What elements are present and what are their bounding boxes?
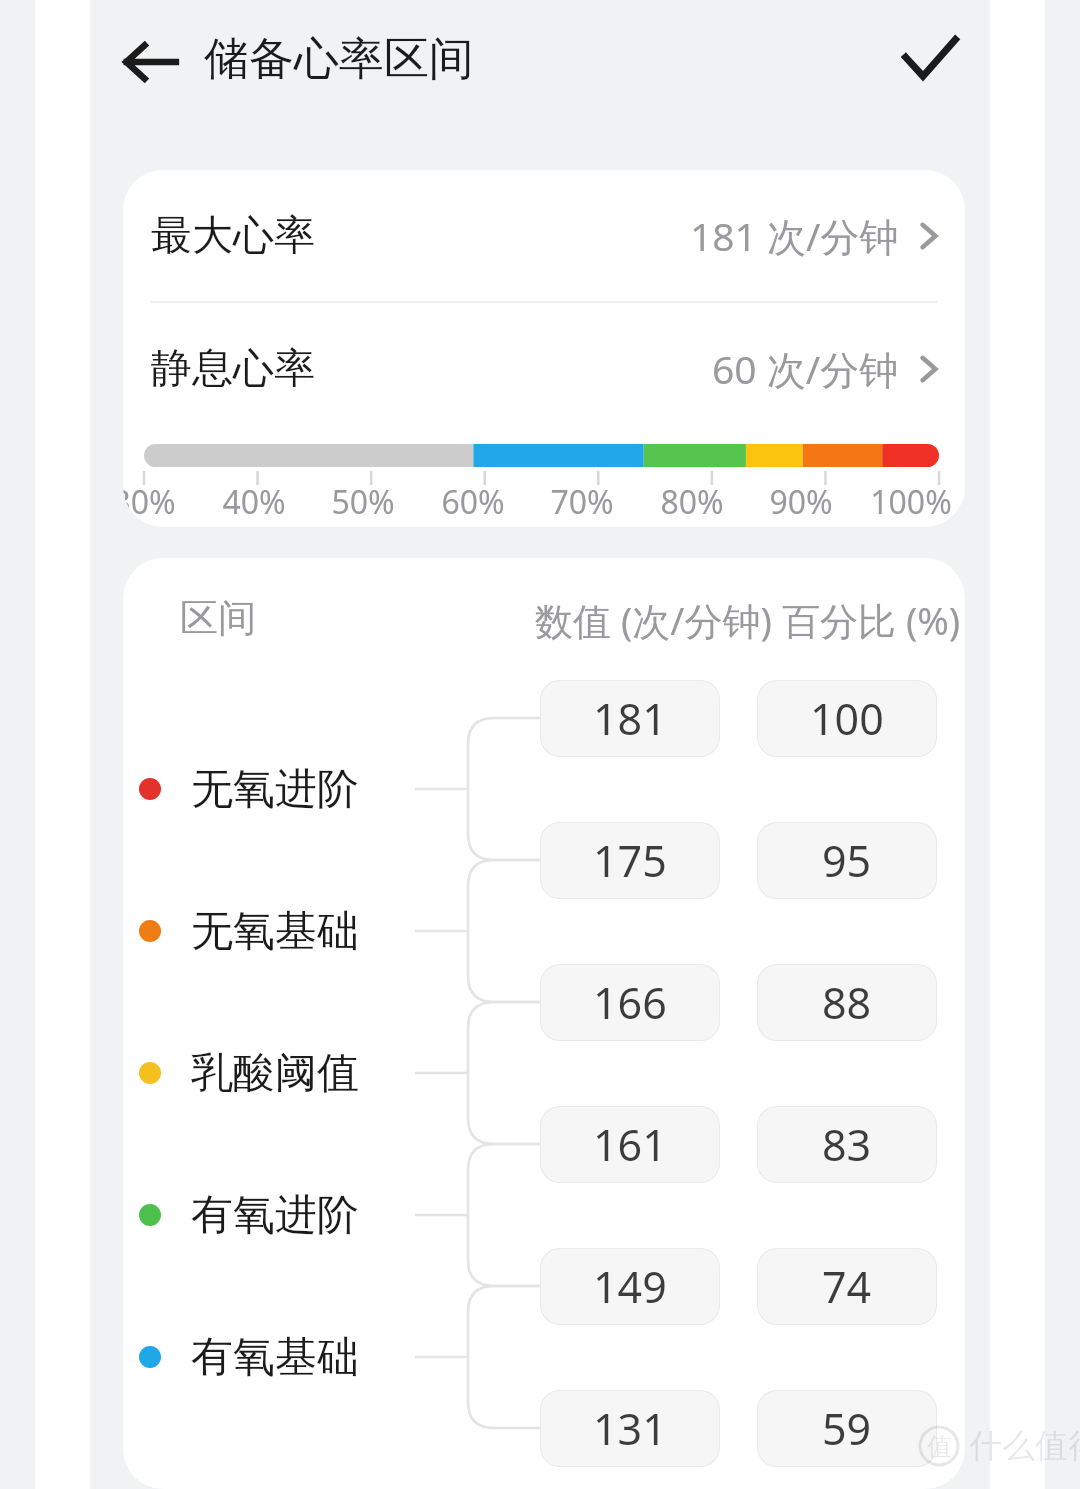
button[interactable]: 149 (540, 1248, 720, 1325)
staticText: 59 (822, 1399, 872, 1458)
button[interactable]: 166 (540, 964, 720, 1041)
staticText: 30% (123, 480, 189, 524)
button[interactable]: 181 (540, 680, 720, 757)
staticText: 值 (927, 1431, 952, 1462)
staticText: 区间 (180, 594, 256, 642)
staticText: 100 (810, 689, 884, 748)
staticText: 无氧基础 (191, 905, 359, 958)
staticText: 80% (647, 480, 737, 524)
staticText: 静息心率 (151, 343, 315, 395)
staticText: 60 次/分钟 (712, 342, 899, 395)
staticText: 乳酸阈值 (191, 1047, 359, 1100)
button[interactable]: 74 (757, 1248, 937, 1325)
button[interactable]: 最大心率 (123, 170, 965, 301)
staticText: 100% (866, 480, 956, 524)
staticText: 70% (537, 480, 627, 524)
staticText: 百分比 (%) (782, 594, 961, 646)
button[interactable]: Back (102, 14, 198, 110)
staticText: 储备心率区间 (204, 31, 474, 88)
staticText: 无氧进阶 (191, 763, 359, 816)
button[interactable]: 100 (757, 680, 937, 757)
staticText: 95 (822, 831, 872, 890)
staticText: 90% (756, 480, 846, 524)
staticText: 40% (209, 480, 299, 524)
button[interactable]: 95 (757, 822, 937, 899)
button[interactable]: 乳酸阈值 (139, 1031, 429, 1115)
staticText: 什么值得买 (969, 1425, 1080, 1467)
staticText: 74 (822, 1257, 872, 1316)
button[interactable]: 131 (540, 1390, 720, 1467)
button[interactable]: 有氧基础 (139, 1315, 429, 1399)
button[interactable]: 59 (757, 1390, 937, 1467)
staticText: 50% (318, 480, 408, 524)
button[interactable]: 175 (540, 822, 720, 899)
button[interactable]: 无氧基础 (139, 889, 429, 973)
staticText: 83 (822, 1115, 872, 1174)
staticText: 有氧基础 (191, 1331, 359, 1384)
staticText: 最大心率 (151, 210, 315, 262)
button[interactable]: Confirm (882, 12, 978, 108)
button[interactable]: 无氧进阶 (139, 747, 429, 831)
staticText: 数值 (次/分钟) (535, 594, 772, 646)
button[interactable]: 161 (540, 1106, 720, 1183)
staticText: 181 次/分钟 (690, 209, 899, 262)
button[interactable]: 静息心率 (123, 303, 965, 434)
staticText: 88 (822, 973, 872, 1032)
staticText: 有氧进阶 (191, 1189, 359, 1242)
button[interactable]: 88 (757, 964, 937, 1041)
staticText: 149 (593, 1257, 667, 1316)
staticText: 60% (428, 480, 518, 524)
staticText: 175 (593, 831, 667, 890)
staticText: 181 (593, 689, 667, 748)
button[interactable]: 有氧进阶 (139, 1173, 429, 1257)
staticText: 131 (593, 1399, 667, 1458)
button[interactable]: 83 (757, 1106, 937, 1183)
staticText: 161 (593, 1115, 667, 1174)
staticText: 166 (593, 973, 667, 1032)
